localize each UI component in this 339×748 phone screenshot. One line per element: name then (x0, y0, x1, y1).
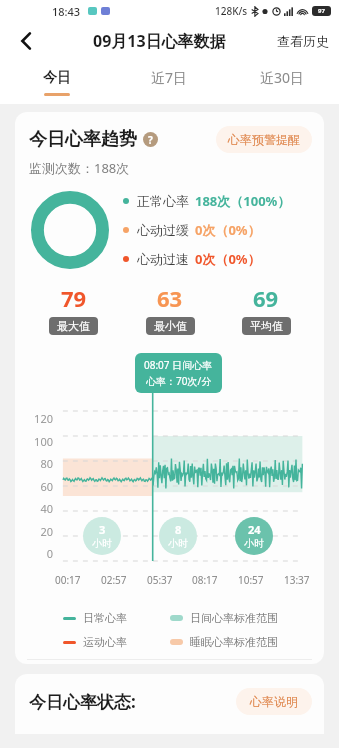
staticText: 运动心率 (83, 635, 127, 649)
staticText: 查看历史 (277, 33, 329, 49)
staticText: ? (148, 133, 153, 147)
staticText: 心率：70次/分 (146, 374, 212, 388)
staticText: 80 (21, 456, 53, 471)
staticText: 心率说明 (250, 694, 298, 709)
staticText: 睡眠心率标准范围 (190, 635, 278, 649)
staticText: 8 (175, 522, 182, 537)
staticText: 今日心率趋势 (29, 128, 137, 151)
button[interactable]: 近7日 (113, 60, 226, 104)
button[interactable]: 3 (83, 517, 121, 555)
button[interactable]: Back (6, 22, 46, 60)
staticText: 18:43 (52, 4, 81, 19)
staticText: 近30日 (260, 68, 305, 87)
staticText: 小时 (244, 537, 264, 550)
staticText: 79 (61, 283, 87, 313)
button[interactable]: 近30日 (226, 60, 339, 104)
staticText: 60 (21, 479, 53, 494)
staticText: 05:37 (147, 573, 173, 587)
button[interactable]: 心率说明 (236, 688, 312, 715)
staticText: 正常心率 (137, 193, 189, 209)
staticText: 小时 (168, 537, 188, 550)
staticText: 09月13日心率数据 (93, 30, 226, 52)
staticText: 120 (21, 411, 53, 426)
staticText: 监测次数：188次 (29, 159, 130, 177)
staticText: 40 (21, 501, 53, 516)
staticText: 最大值 (57, 319, 90, 333)
button[interactable]: 心率预警提醒 (216, 126, 312, 153)
staticText: 00:17 (55, 573, 81, 587)
staticText: 心动过缓 (137, 222, 189, 238)
staticText: 3 (99, 522, 106, 537)
staticText: 日间心率标准范围 (190, 611, 278, 625)
button[interactable]: 今日 (0, 60, 113, 104)
staticText: 08:17 (192, 573, 218, 587)
staticText: 100 (21, 434, 53, 449)
staticText: 188次（100%） (195, 192, 291, 210)
button[interactable]: 69 (218, 283, 314, 335)
button[interactable]: 79 (25, 283, 122, 335)
staticText: 今日 (43, 69, 71, 87)
staticText: 08:07 日间心率 (144, 358, 213, 372)
staticText: 63 (157, 283, 183, 313)
staticText: 128K/s (215, 4, 248, 18)
staticText: 今日心率状态: (29, 690, 136, 713)
staticText: 近7日 (151, 68, 188, 87)
button[interactable]: 24 (235, 517, 273, 555)
staticText: 69 (253, 283, 279, 313)
staticText: 0 (21, 546, 53, 561)
button[interactable]: Help (143, 132, 158, 147)
staticText: 0次（0%） (195, 250, 261, 268)
staticText: 小时 (92, 537, 112, 550)
staticText: 最小值 (154, 319, 187, 333)
button[interactable]: 查看历史 (267, 25, 339, 57)
staticText: 97 (318, 7, 325, 15)
staticText: 13:37 (284, 573, 310, 587)
staticText: 平均值 (250, 319, 283, 333)
button[interactable]: 63 (122, 283, 218, 335)
staticText: 20 (21, 524, 53, 539)
staticText: 02:57 (101, 573, 127, 587)
button[interactable]: 8 (159, 517, 197, 555)
staticText: 日常心率 (83, 611, 127, 625)
staticText: 10:57 (238, 573, 264, 587)
staticText: 心动过速 (137, 251, 189, 267)
staticText: 0次（0%） (195, 221, 261, 239)
staticText: 24 (248, 522, 261, 537)
staticText: 心率预警提醒 (228, 132, 300, 147)
